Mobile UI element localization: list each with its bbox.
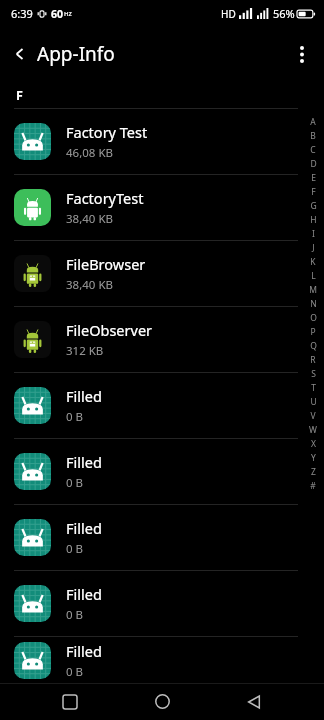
staticText: 0 B [66,607,84,623]
staticText: 38,40 KB [66,211,113,227]
button[interactable]: FileBrowser [0,241,324,306]
staticText: R [310,354,316,366]
button[interactable]: Home [140,683,184,720]
staticText: # [310,480,316,492]
staticText: 6:39 [11,6,33,21]
staticText: S [311,368,316,380]
staticText: W [309,424,317,436]
button[interactable]: Back [0,35,123,73]
staticText: Filled [66,386,102,406]
staticText: 312 KB [66,343,104,359]
staticText: L [311,270,316,282]
staticText: Z [311,466,316,478]
staticText: F [311,186,316,198]
staticText: G [310,200,317,212]
button[interactable]: Recents [48,683,92,720]
staticText: Y [311,452,316,464]
staticText: U [310,396,317,408]
staticText: FileBrowser [66,254,146,274]
staticText: N [310,298,317,310]
button[interactable]: Filled [0,505,324,570]
staticText: Filled [66,452,102,472]
staticText: Filled [66,518,102,538]
staticText: T [311,382,316,394]
button[interactable]: More options [280,32,324,76]
staticText: Factory Test [66,122,148,142]
staticText: 46,08 KB [66,145,113,161]
staticText: Q [310,340,317,352]
button[interactable]: Filled [0,373,324,438]
staticText: FactoryTest [66,188,144,208]
button[interactable]: FileObserver [0,307,324,372]
staticText: 0 B [66,541,84,557]
button[interactable]: Filled [0,439,324,504]
other: Back [13,47,27,61]
staticText: C [310,144,316,156]
staticText: H [310,214,317,226]
staticText: F [16,87,23,104]
staticText: Filled [66,584,102,604]
button[interactable]: FactoryTest [0,175,324,240]
staticText: P [310,326,316,338]
staticText: 0 B [66,409,84,425]
staticText: Filled [66,641,102,661]
staticText: E [311,172,316,184]
staticText: O [310,312,317,324]
button[interactable]: Back [232,683,276,720]
staticText: FileObserver [66,320,153,340]
staticText: 0 B [66,664,84,680]
staticText: K [310,256,316,268]
staticText: X [311,438,316,450]
staticText: App-Info [37,41,115,67]
staticText: 0 B [66,475,84,491]
staticText: J [312,242,315,254]
button[interactable]: Alphabet index [302,115,324,493]
staticText: 60 [51,7,64,21]
staticText: B [310,130,316,142]
staticText: M [309,284,317,296]
staticText: 56% [273,6,295,21]
staticText: HD [221,7,236,21]
button[interactable]: Filled [0,571,324,636]
staticText: D [310,158,317,170]
button[interactable]: Factory Test [0,109,324,174]
staticText: 38,40 KB [66,277,113,293]
button[interactable]: Filled [0,637,324,683]
staticText: I [312,228,315,240]
staticText: ʜᴢ [64,9,72,19]
staticText: A [310,116,316,128]
staticText: V [310,410,316,422]
